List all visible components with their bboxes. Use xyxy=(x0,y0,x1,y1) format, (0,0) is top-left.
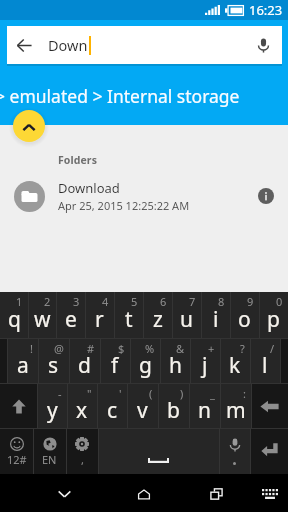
button[interactable]: / xyxy=(250,339,280,383)
staticText: n xyxy=(198,396,211,425)
staticText: Download xyxy=(58,179,120,197)
button[interactable]: Enter xyxy=(250,429,288,474)
staticText: p xyxy=(267,305,280,334)
staticText: Down xyxy=(48,35,88,55)
button[interactable]: # xyxy=(69,339,100,383)
staticText: o xyxy=(238,305,251,334)
staticText: x xyxy=(76,396,88,425)
staticText: u xyxy=(180,305,193,334)
button[interactable]: " xyxy=(67,384,97,428)
button[interactable]: Voice search xyxy=(244,26,282,64)
staticText: / xyxy=(270,341,275,356)
staticText: i xyxy=(213,305,219,334)
staticText: e xyxy=(65,305,77,334)
staticText: w xyxy=(34,305,51,334)
staticText: 1 xyxy=(16,294,23,309)
button[interactable]: Collapse xyxy=(13,110,45,142)
button[interactable]: Recents xyxy=(184,474,248,512)
staticText: b xyxy=(167,396,180,425)
staticText: + xyxy=(208,341,215,356)
staticText: 5 xyxy=(131,294,138,309)
button[interactable]: + xyxy=(190,339,220,383)
staticText: q xyxy=(8,305,21,334)
button[interactable]: 2 xyxy=(28,292,56,338)
staticText: @ xyxy=(54,341,64,356)
staticText: > emulated > Internal storage xyxy=(0,84,240,108)
staticText: - xyxy=(58,386,62,401)
staticText: m xyxy=(226,396,246,425)
button[interactable]: $ xyxy=(100,339,130,383)
button[interactable]: More symbols xyxy=(280,339,288,383)
button[interactable]: - xyxy=(37,384,67,428)
staticText: : xyxy=(243,386,246,401)
button[interactable]: 12# xyxy=(0,429,33,474)
button[interactable]: Backspace xyxy=(251,384,288,428)
button[interactable]: 1 xyxy=(0,292,28,338)
staticText: & xyxy=(176,341,185,356)
staticText: r xyxy=(95,305,104,334)
button[interactable]: Voice input xyxy=(219,429,250,474)
button[interactable]: Home xyxy=(104,474,184,512)
button[interactable]: 8 xyxy=(201,292,230,338)
button[interactable]: : xyxy=(220,384,251,428)
staticText: h xyxy=(169,351,182,380)
staticText: ' xyxy=(119,386,122,401)
button[interactable]: 4 xyxy=(85,292,114,338)
staticText: f xyxy=(111,351,119,380)
staticText: c xyxy=(107,396,118,425)
button[interactable]: EN xyxy=(33,429,66,474)
button[interactable]: % xyxy=(130,339,160,383)
staticText: 3 xyxy=(73,294,80,309)
button[interactable]: Back xyxy=(7,26,48,64)
button[interactable]: ! xyxy=(7,339,38,383)
staticText: 2 xyxy=(44,294,51,309)
button[interactable]: 6 xyxy=(143,292,172,338)
staticText: # xyxy=(87,341,95,356)
button[interactable]: 7 xyxy=(172,292,201,338)
staticText: 7 xyxy=(189,294,196,309)
staticText: Folders xyxy=(58,153,98,167)
staticText: $ xyxy=(118,341,125,356)
staticText: j xyxy=(202,351,208,380)
staticText: EN xyxy=(42,452,57,467)
button[interactable]: ? xyxy=(220,339,250,383)
button[interactable]: 3 xyxy=(56,292,85,338)
staticText: 4 xyxy=(102,294,109,309)
button[interactable]: Keyboard xyxy=(252,474,288,512)
button[interactable]: Back xyxy=(24,474,104,512)
staticText: ! xyxy=(30,341,33,356)
staticText: ( xyxy=(149,386,153,401)
button[interactable]: Shift xyxy=(0,384,37,428)
staticText: v xyxy=(137,396,148,425)
staticText: 9 xyxy=(247,294,254,309)
staticText: l xyxy=(262,351,268,380)
staticText: k xyxy=(229,351,241,380)
staticText: a xyxy=(17,351,29,380)
staticText: " xyxy=(87,386,92,401)
button[interactable]: 9 xyxy=(230,292,259,338)
button[interactable]: 5 xyxy=(114,292,143,338)
staticText: s xyxy=(48,351,59,380)
button[interactable]: Info xyxy=(249,179,283,213)
button[interactable]: Space xyxy=(98,429,219,474)
staticText: y xyxy=(47,396,58,425)
button[interactable]: ' xyxy=(97,384,127,428)
button[interactable]: Download xyxy=(0,174,288,218)
staticText: , xyxy=(81,452,84,467)
staticText: Apr 25, 2015 12:25:22 AM xyxy=(58,198,190,213)
staticText: z xyxy=(153,305,163,334)
button[interactable]: , xyxy=(66,429,98,474)
button[interactable]: ) xyxy=(158,384,189,428)
staticText: 6 xyxy=(160,294,167,309)
staticText: % xyxy=(145,341,155,356)
button[interactable]: ( xyxy=(127,384,158,428)
staticText: 8 xyxy=(218,294,225,309)
button[interactable]: & xyxy=(160,339,190,383)
button[interactable]: _ xyxy=(189,384,220,428)
staticText: ? xyxy=(240,341,245,356)
staticText: g xyxy=(139,351,152,380)
button[interactable]: @ xyxy=(38,339,69,383)
staticText: d xyxy=(78,351,91,380)
button[interactable]: 0 xyxy=(259,292,288,338)
